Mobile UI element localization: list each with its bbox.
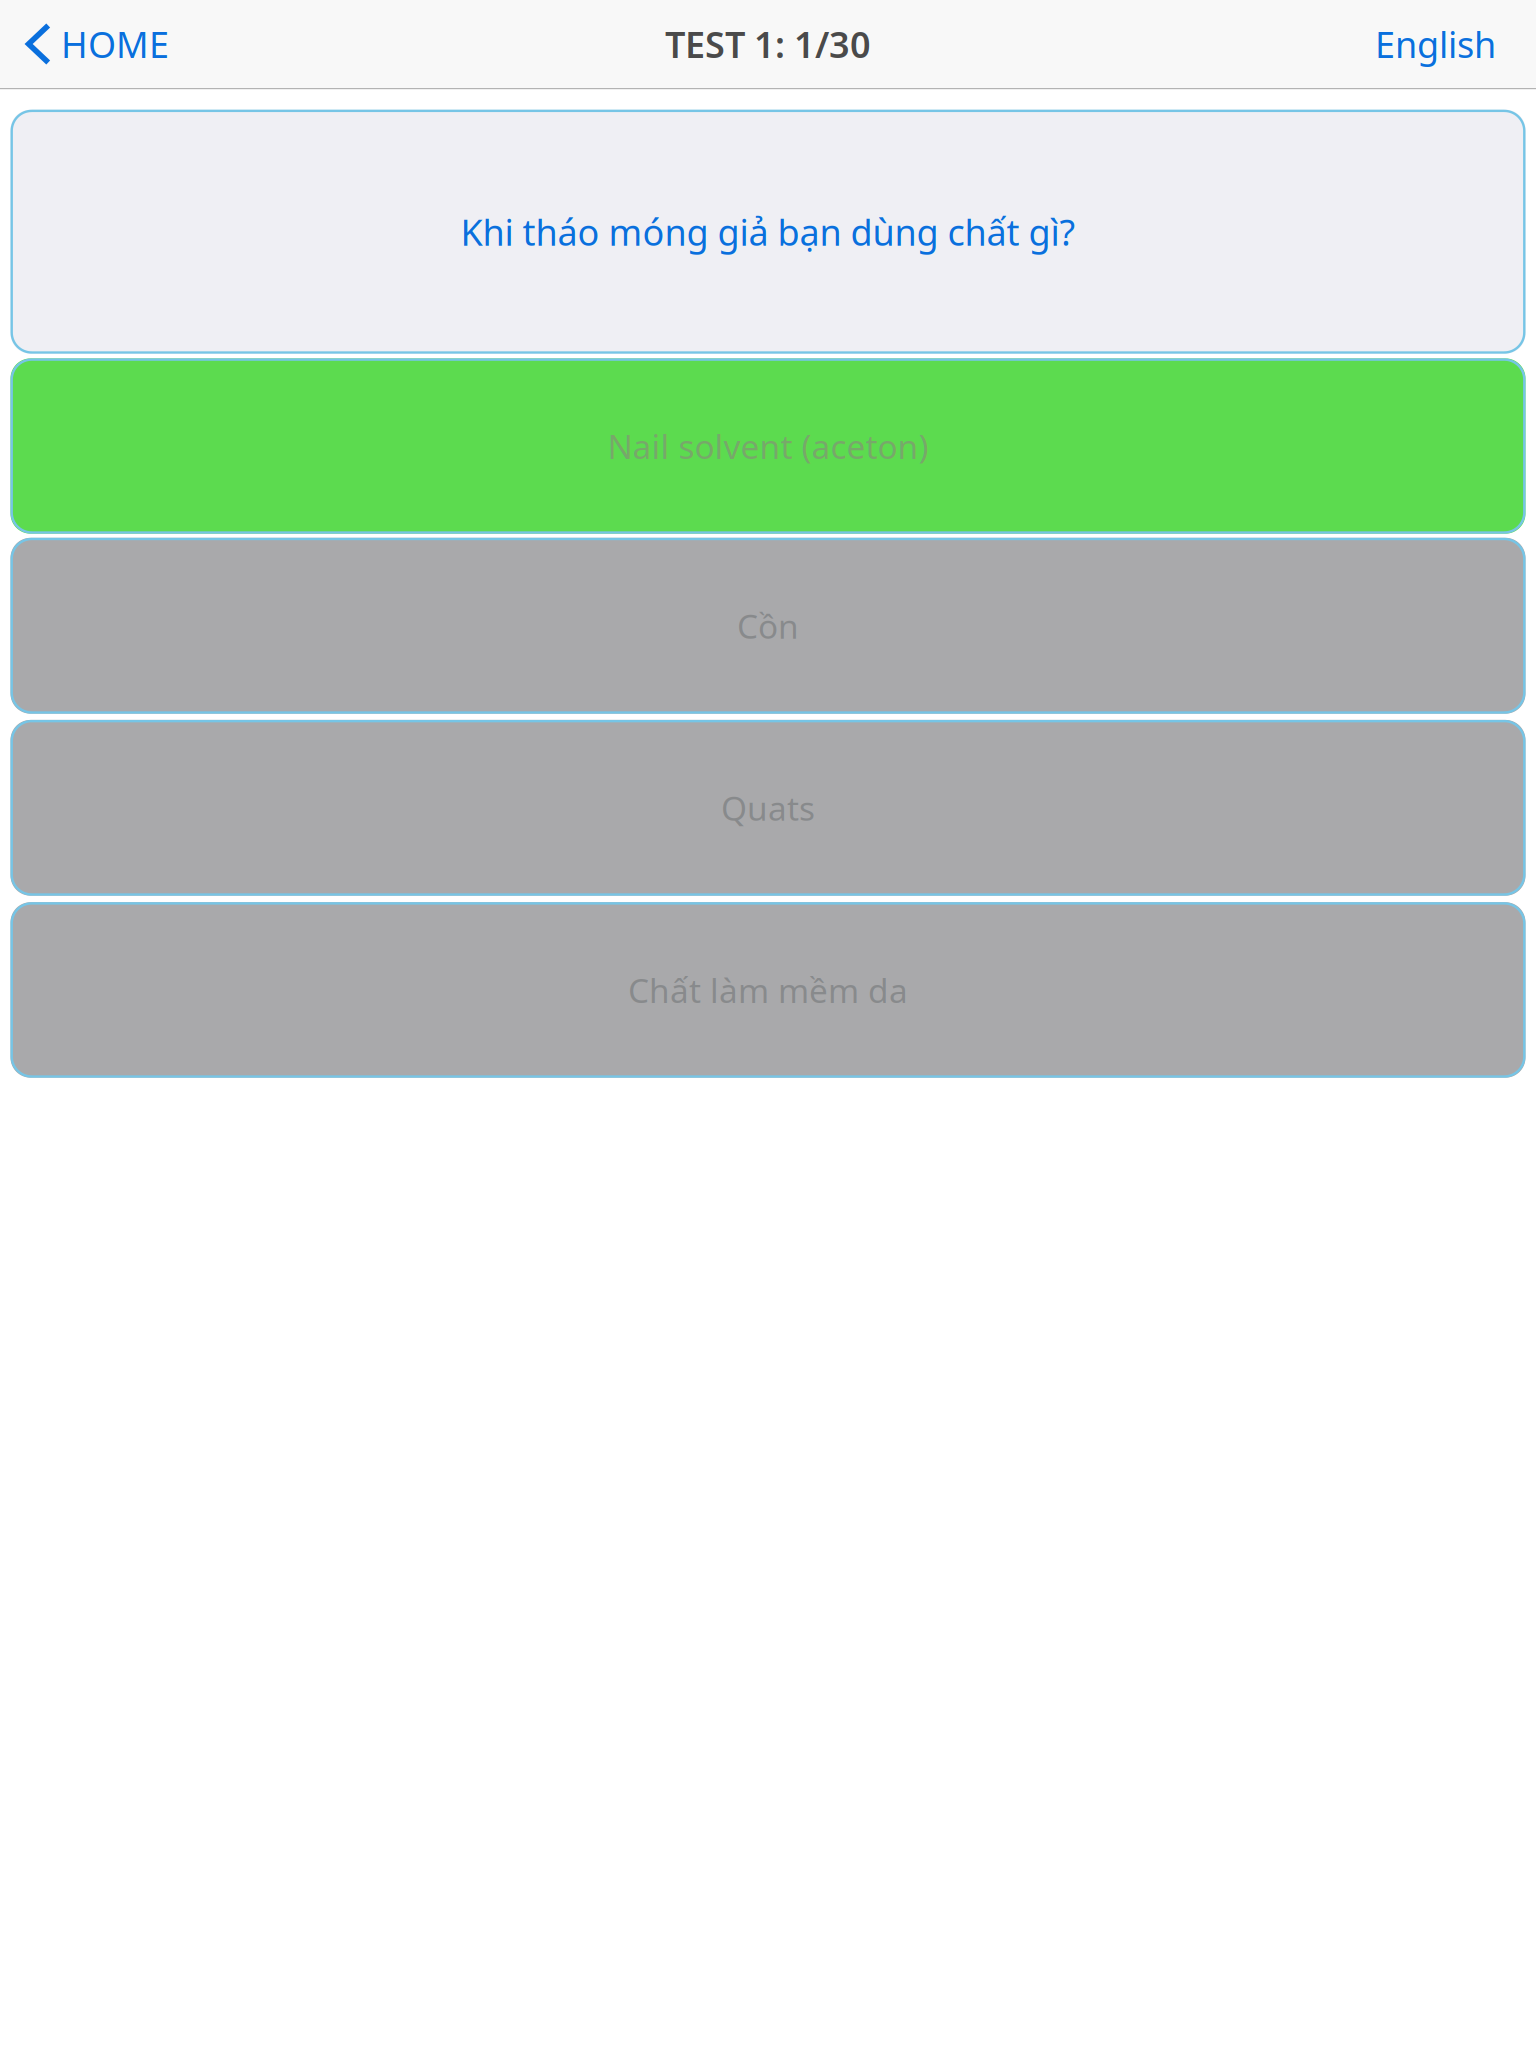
- button[interactable]: Cồn: [10, 534, 1525, 714]
- staticText: TEST 1: 1/30: [665, 20, 871, 68]
- button[interactable]: Back to HOME: [0, 2, 183, 86]
- button[interactable]: Chất làm mềm da: [10, 896, 1525, 1078]
- button[interactable]: Quats: [10, 714, 1525, 896]
- staticText: English: [1375, 20, 1496, 68]
- button[interactable]: Nail solvent (aceton): [10, 354, 1525, 534]
- staticText: HOME: [61, 20, 169, 68]
- staticText: Quats: [721, 786, 815, 830]
- staticText: Cồn: [737, 604, 799, 648]
- button[interactable]: English: [1357, 2, 1536, 86]
- staticText: Khi tháo móng giả bạn dùng chất gì?: [460, 208, 1075, 256]
- staticText: Nail solvent (aceton): [607, 424, 928, 468]
- staticText: Chất làm mềm da: [628, 968, 908, 1012]
